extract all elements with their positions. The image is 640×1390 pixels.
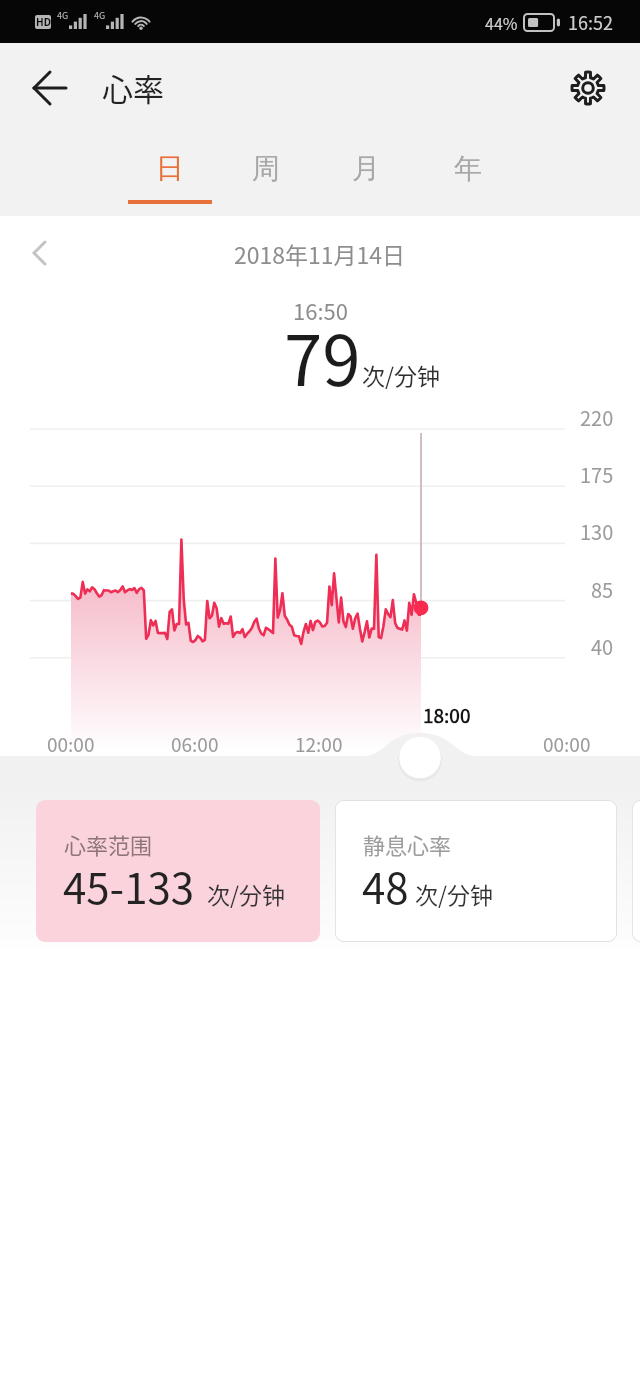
staticText: 次/分钟 [362, 358, 441, 391]
button[interactable]: 心率范围 [36, 800, 320, 942]
staticText: 220 [580, 403, 614, 432]
staticText: 00:00 [47, 730, 95, 758]
button[interactable]: Settings [555, 55, 621, 121]
staticText: 45-133 [63, 855, 195, 916]
staticText: 44% [485, 11, 518, 34]
staticText: 85 [591, 575, 614, 604]
staticText: 79 [284, 306, 361, 406]
staticText: 4G [94, 9, 106, 22]
staticText: 次/分钟 [207, 877, 286, 910]
staticText: 静息心率 [363, 828, 452, 860]
staticText: 18:00 [423, 701, 471, 729]
button[interactable]: 年 [423, 132, 513, 216]
staticText: 48 [362, 855, 409, 916]
staticText: 40 [591, 632, 614, 661]
staticText: 次/分钟 [415, 877, 494, 910]
staticText: 12:00 [295, 730, 343, 758]
button[interactable]: 月 [321, 132, 411, 216]
staticText: 2018年11月14日 [234, 237, 406, 270]
staticText: 175 [580, 460, 614, 489]
button[interactable]: Back [17, 55, 83, 121]
staticText: 16:52 [568, 9, 613, 35]
staticText: HD [36, 15, 51, 29]
staticText: 周 [252, 151, 280, 186]
button[interactable]: 平均心率 [632, 800, 640, 942]
staticText: 日 [156, 151, 184, 186]
staticText: 16:50 [293, 294, 348, 326]
staticText: 心率范围 [64, 828, 153, 860]
staticText: 月 [352, 151, 380, 186]
button[interactable]: 静息心率 [335, 800, 617, 942]
button[interactable]: 周 [221, 132, 311, 216]
staticText: 4G [57, 9, 69, 22]
staticText: 00:00 [543, 730, 591, 758]
staticText: 年 [454, 151, 482, 186]
button[interactable]: Previous day [14, 227, 66, 279]
staticText: 06:00 [171, 730, 219, 758]
staticText: 心率 [102, 65, 164, 110]
staticText: 130 [580, 517, 614, 546]
button[interactable]: 日 [125, 132, 215, 216]
